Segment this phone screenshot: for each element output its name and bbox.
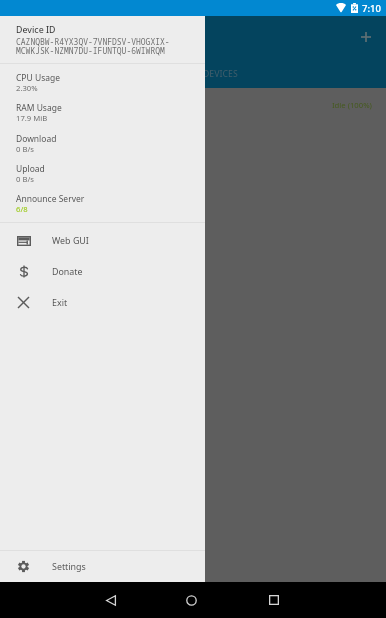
staticText: 7:10	[362, 2, 381, 15]
staticText: DEVICES	[203, 68, 238, 80]
button[interactable]: CPU Usage	[0, 70, 205, 100]
staticText: Device ID	[16, 24, 56, 36]
button[interactable]: Announce Server	[0, 191, 205, 221]
button[interactable]: FOLDERS	[28, 60, 221, 88]
staticText: Download	[16, 133, 57, 145]
button[interactable]: Donate	[0, 256, 205, 287]
staticText: Upload	[16, 163, 45, 175]
staticText: 6/8	[16, 204, 28, 214]
button[interactable]: Web GUI	[0, 225, 205, 256]
button[interactable]: Settings	[0, 551, 205, 582]
button[interactable]: Add device	[349, 20, 382, 53]
button[interactable]: Download	[0, 131, 205, 161]
button[interactable]: Recent apps	[258, 582, 290, 618]
staticText: RAM Usage	[16, 102, 62, 114]
staticText: 0 B/s	[16, 144, 34, 154]
staticText: CAZNQBW-R4YX3QV-7VNFDSV-VHOGXIX-	[16, 36, 170, 47]
staticText: Donate	[52, 265, 83, 277]
staticText: 0 B/s	[16, 174, 34, 184]
staticText: Idle (100%)	[332, 100, 372, 110]
staticText: MCWKJSK-NZMN7DU-IFUNTQU-6WIWRQM	[16, 45, 165, 56]
button[interactable]: Exit	[0, 287, 205, 318]
staticText: Settings	[52, 560, 86, 572]
staticText: 2.30%	[16, 83, 38, 93]
button[interactable]: Back	[95, 582, 127, 618]
staticText: 17.9 MiB	[16, 113, 48, 123]
staticText: Announce Server	[16, 193, 85, 205]
staticText: CPU Usage	[16, 72, 61, 84]
button[interactable]: DEVICES	[124, 60, 317, 88]
button[interactable]: RAM Usage	[0, 100, 205, 130]
staticText: Web GUI	[52, 234, 89, 246]
button[interactable]: Home	[175, 582, 207, 618]
staticText: Exit	[52, 296, 68, 308]
button[interactable]: Upload	[0, 161, 205, 191]
